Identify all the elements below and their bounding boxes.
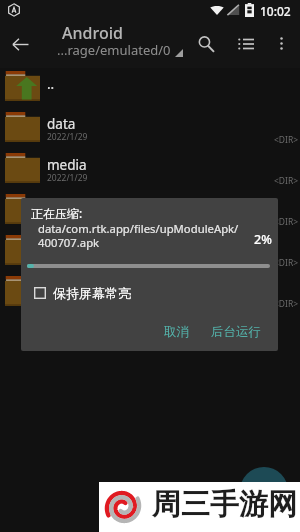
- staticText: 2022/1/29: [47, 254, 88, 266]
- button[interactable]: data: [0, 109, 300, 150]
- button[interactable]: ..: [0, 68, 300, 109]
- staticText: tmp: [47, 279, 73, 297]
- button[interactable]: obb: [0, 191, 300, 232]
- button[interactable]: media: [0, 150, 300, 191]
- button[interactable]: View mode: [229, 27, 263, 61]
- staticText: <DIR>: [274, 298, 299, 310]
- staticText: obb: [47, 197, 72, 215]
- staticText: sdk: [47, 238, 69, 256]
- staticText: <DIR>: [274, 134, 299, 146]
- staticText: media: [47, 156, 87, 174]
- staticText: data: [47, 115, 76, 133]
- button[interactable]: More options: [266, 28, 297, 59]
- button[interactable]: 保持屏幕常亮: [34, 285, 131, 301]
- button[interactable]: Add: [240, 467, 288, 515]
- staticText: 后台运行: [211, 324, 261, 340]
- button[interactable]: 后台运行: [203, 319, 269, 345]
- staticText: 2%: [254, 231, 272, 248]
- button[interactable]: 取消: [156, 319, 197, 345]
- staticText: 2022/1/29: [47, 213, 88, 225]
- staticText: 取消: [164, 324, 189, 340]
- staticText: 2022/1/29: [47, 131, 88, 143]
- staticText: <DIR>: [274, 175, 299, 187]
- staticText: data/com.rtk.app/files/upModuleApk/ 4007…: [38, 221, 253, 250]
- staticText: <DIR>: [274, 257, 299, 269]
- button[interactable]: sdk: [0, 232, 300, 273]
- staticText: 10:02: [260, 3, 291, 19]
- staticText: 周三手游网: [152, 486, 297, 523]
- staticText: 2022/1/29: [47, 295, 88, 307]
- staticText: 正在压缩:: [31, 205, 83, 221]
- staticText: Android: [62, 22, 123, 44]
- button[interactable]: Search: [189, 27, 223, 61]
- button[interactable]: tmp: [0, 273, 300, 314]
- staticText: ..: [47, 75, 55, 93]
- staticText: <DIR>: [274, 216, 299, 228]
- button[interactable]: Back: [4, 28, 36, 60]
- staticText: 2022/1/29: [47, 172, 88, 184]
- staticText: 保持屏幕常亮: [53, 285, 131, 301]
- staticText: ...rage/emulated/0: [57, 41, 171, 59]
